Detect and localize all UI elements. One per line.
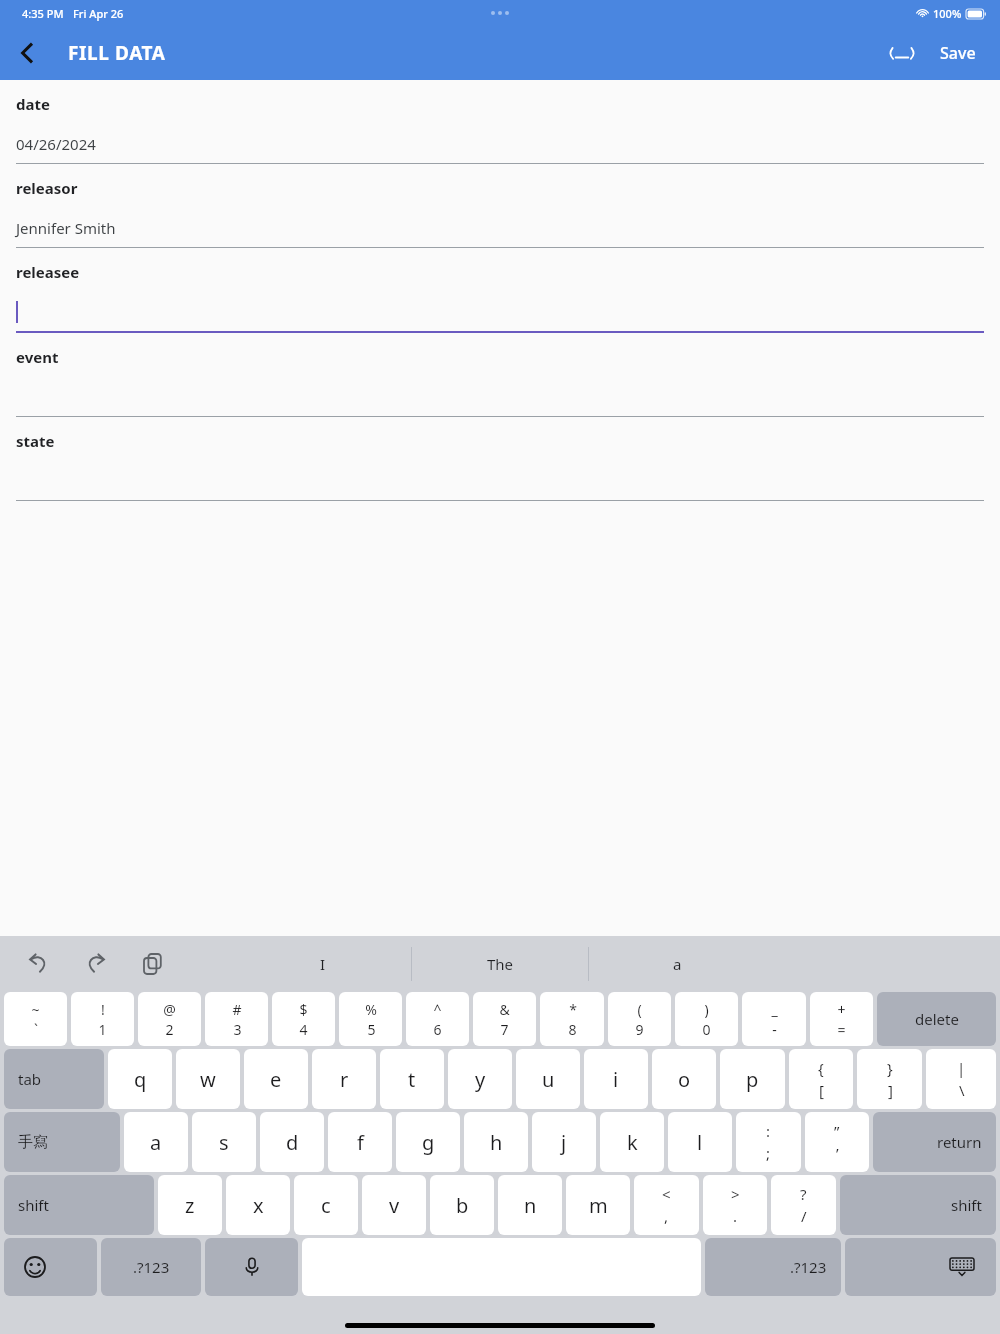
button[interactable]: n [498,1175,562,1235]
staticText: } [887,1058,893,1078]
button[interactable]: _ [742,992,806,1046]
button[interactable]: l [668,1112,732,1172]
button[interactable]: o [652,1049,716,1109]
staticText: t [408,1066,416,1093]
button[interactable]: | [926,1049,996,1109]
staticText: ` [34,1020,38,1039]
button[interactable]: f [328,1112,392,1172]
button[interactable]: s [192,1112,256,1172]
button[interactable]: ~ [4,992,67,1046]
button[interactable]: r [312,1049,376,1109]
staticText: 3 [233,1020,242,1039]
button[interactable]: Redo [76,944,116,984]
staticText: _ [771,1000,778,1019]
button[interactable]: ! [71,992,134,1046]
button[interactable]: g [396,1112,460,1172]
button[interactable]: shift [840,1175,996,1235]
button[interactable]: ( [608,992,671,1046]
button[interactable]: j [532,1112,596,1172]
button[interactable]: event [0,333,1000,417]
button[interactable]: Save [930,32,986,74]
button[interactable]: Hide keyboard [845,1238,996,1296]
button[interactable]: ? [771,1175,836,1235]
button[interactable]: m [566,1175,630,1235]
button[interactable]: y [448,1049,512,1109]
staticText: & [499,1000,510,1019]
button[interactable]: * [540,992,604,1046]
button[interactable]: v [362,1175,426,1235]
staticText: ? [800,1184,807,1204]
staticText: 4:35 PM [22,6,64,21]
button[interactable]: < [634,1175,699,1235]
button[interactable]: } [857,1049,922,1109]
button[interactable]: w [176,1049,240,1109]
button[interactable]: h [464,1112,528,1172]
button[interactable]: b [430,1175,494,1235]
button[interactable]: # [205,992,268,1046]
button[interactable]: shift [4,1175,154,1235]
staticText: state [16,431,55,451]
button[interactable]: % [339,992,402,1046]
button[interactable]: .?123 [705,1238,841,1296]
button[interactable]: i [584,1049,648,1109]
button[interactable]: ” [805,1112,869,1172]
button[interactable]: { [789,1049,853,1109]
button[interactable]: : [736,1112,801,1172]
staticText: ~ [31,1000,40,1019]
button[interactable]: .?123 [101,1238,201,1296]
staticText: y [475,1066,486,1093]
button[interactable]: ^ [406,992,469,1046]
button[interactable]: k [600,1112,664,1172]
button[interactable]: state [0,417,1000,501]
button[interactable]: The [412,942,588,986]
button[interactable]: d [260,1112,324,1172]
button[interactable]: tab [4,1049,104,1109]
staticText: 04/26/2024 [16,134,96,154]
button[interactable]: releasor [0,164,1000,248]
staticText: c [321,1192,331,1219]
button[interactable]: x [226,1175,290,1235]
button[interactable]: a [124,1112,188,1172]
button[interactable]: z [158,1175,222,1235]
button[interactable]: & [473,992,536,1046]
button[interactable]: Back [0,26,54,80]
button[interactable]: Paste [134,944,174,984]
button[interactable]: a [589,942,765,986]
staticText: date [16,94,50,114]
button[interactable]: Keyboard [880,31,924,75]
button[interactable]: u [516,1049,580,1109]
staticText: $ [299,1000,308,1019]
staticText: 7 [500,1020,509,1039]
button[interactable]: t [380,1049,444,1109]
button[interactable]: $ [272,992,335,1046]
button[interactable]: return [873,1112,996,1172]
staticText: 手寫 [18,1133,48,1152]
button[interactable]: @ [138,992,201,1046]
staticText: [ [819,1080,824,1100]
button[interactable]: I [235,942,411,986]
button[interactable]: ) [675,992,738,1046]
staticText: ( [637,1000,642,1019]
staticText: ’ [836,1143,839,1163]
staticText: ! [101,1000,105,1019]
staticText: / [801,1206,807,1226]
staticText: k [627,1129,638,1156]
button[interactable]: Undo [18,944,58,984]
button[interactable]: delete [877,992,996,1046]
staticText: u [542,1066,555,1093]
staticText: Save [940,42,976,64]
button[interactable]: c [294,1175,358,1235]
button[interactable]: Emoji [4,1238,97,1296]
staticText: 8 [568,1020,577,1039]
button[interactable]: p [720,1049,785,1109]
button[interactable]: q [108,1049,172,1109]
button[interactable]: releasee [0,248,1000,333]
button[interactable]: + [810,992,873,1046]
button[interactable]: e [244,1049,308,1109]
button[interactable]: 手寫 [4,1112,120,1172]
button[interactable]: date [0,80,1000,164]
staticText: v [389,1192,400,1219]
button[interactable]: Voice input [205,1238,298,1296]
button[interactable]: > [703,1175,767,1235]
